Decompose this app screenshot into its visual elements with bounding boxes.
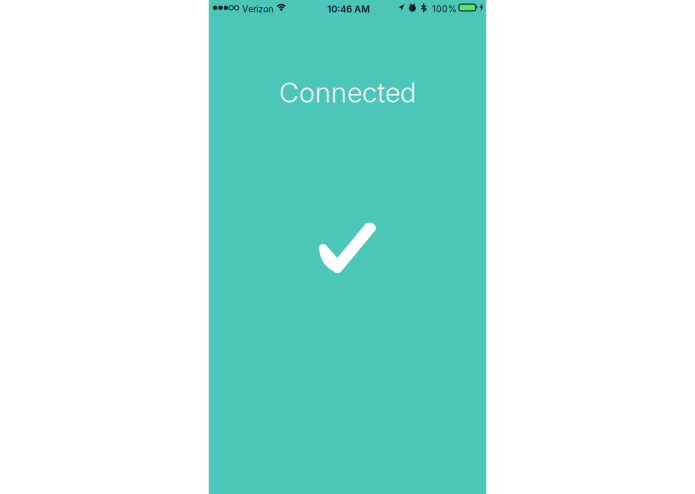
button[interactable]: Connected [209, 76, 486, 273]
staticText: Connected [279, 76, 416, 109]
staticText: 100% [432, 4, 457, 14]
staticText: Verizon [242, 4, 273, 14]
staticText: 10:46 AM [327, 3, 370, 15]
